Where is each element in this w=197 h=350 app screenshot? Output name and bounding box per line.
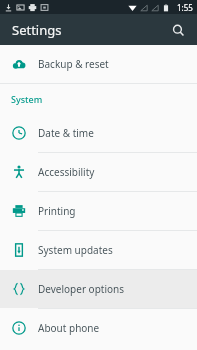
button[interactable]: About phone <box>0 309 197 347</box>
button[interactable]: Printing <box>0 192 197 230</box>
staticText: Settings <box>12 21 62 39</box>
staticText: About phone <box>38 321 100 335</box>
button[interactable]: System updates <box>0 231 197 269</box>
staticText: Date & time <box>38 126 94 140</box>
button[interactable]: Accessibility <box>0 153 197 191</box>
staticText: Accessibility <box>38 165 95 179</box>
staticText: System <box>11 93 43 105</box>
staticText: Backup & reset <box>38 57 109 71</box>
button[interactable]: Developer options <box>0 270 197 308</box>
button[interactable]: Backup & reset <box>0 45 197 83</box>
staticText: Printing <box>38 204 76 218</box>
staticText: System updates <box>38 243 113 257</box>
button[interactable]: Date & time <box>0 114 197 152</box>
staticText: Developer options <box>38 282 125 296</box>
staticText: 1:55 <box>177 2 193 13</box>
button[interactable]: Search <box>165 17 191 43</box>
